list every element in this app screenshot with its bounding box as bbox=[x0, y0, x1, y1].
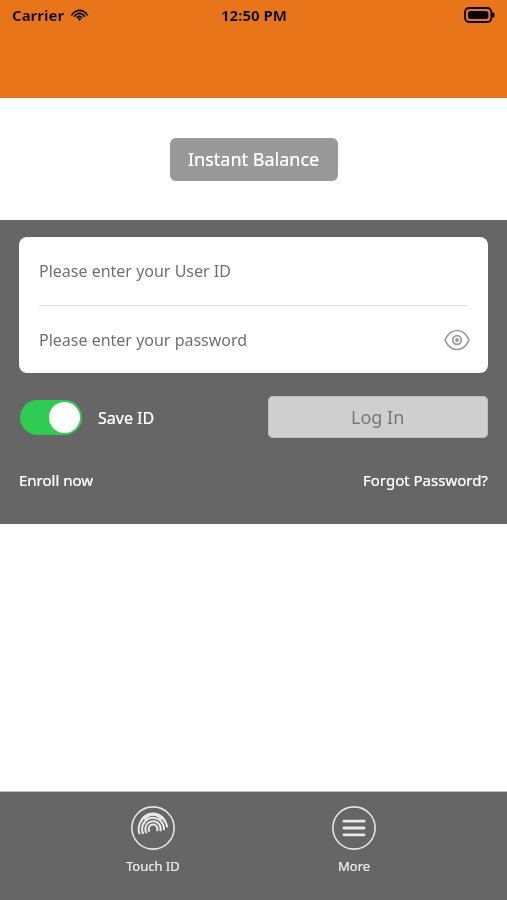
staticText: Enroll now bbox=[19, 470, 94, 490]
button[interactable]: Please enter your User ID bbox=[19, 237, 488, 305]
staticText: More bbox=[338, 857, 371, 875]
staticText: Carrier bbox=[12, 5, 65, 25]
staticText: Please enter your password bbox=[39, 329, 248, 351]
staticText: Instant Balance bbox=[188, 147, 320, 172]
staticText: Save ID bbox=[98, 407, 155, 429]
button[interactable]: Log In bbox=[268, 396, 488, 438]
staticText: Please enter your User ID bbox=[39, 260, 231, 282]
button[interactable]: Please enter your password bbox=[19, 306, 488, 373]
staticText: Forgot Password? bbox=[363, 470, 488, 490]
staticText: 12:50 PM bbox=[221, 5, 287, 25]
button[interactable]: Touch ID bbox=[105, 792, 201, 881]
staticText: Touch ID bbox=[126, 857, 180, 875]
button[interactable]: Instant Balance bbox=[170, 138, 338, 181]
button[interactable]: Show password bbox=[440, 323, 474, 357]
button[interactable]: Save ID bbox=[20, 400, 155, 435]
staticText: Log In bbox=[351, 405, 405, 430]
button[interactable]: More bbox=[306, 792, 402, 881]
button[interactable]: Forgot Password? bbox=[363, 467, 488, 493]
button[interactable]: Enroll now bbox=[19, 467, 94, 493]
